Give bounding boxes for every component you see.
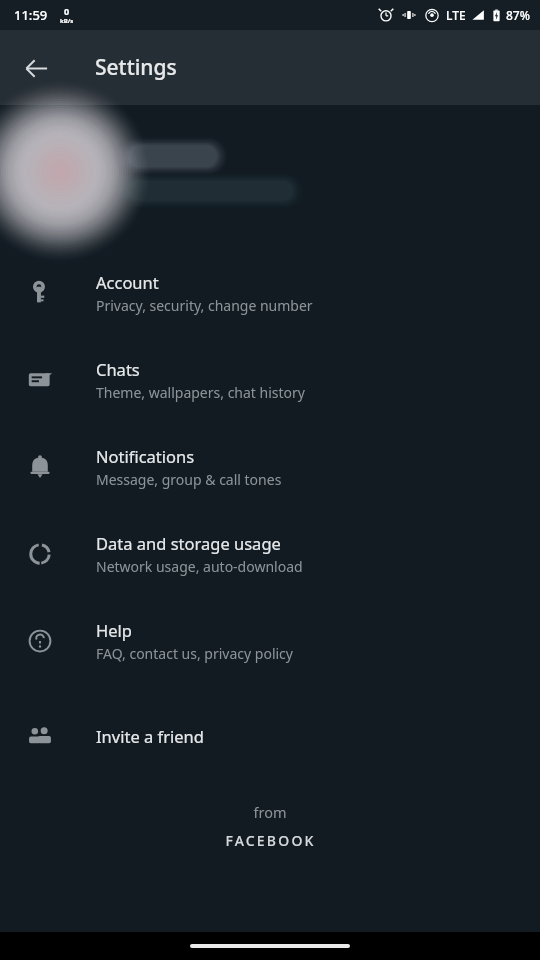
- staticText: FAQ, contact us, privacy policy: [96, 644, 293, 663]
- button[interactable]: Account: [0, 249, 540, 336]
- staticText: FACEBOOK: [225, 831, 316, 850]
- staticText: Privacy, security, change number: [96, 296, 313, 315]
- staticText: 0: [64, 5, 70, 17]
- staticText: Settings: [95, 53, 177, 82]
- staticText: Help: [96, 619, 132, 641]
- staticText: kB/s: [60, 17, 74, 25]
- staticText: Chats: [96, 358, 140, 380]
- staticText: Invite a friend: [96, 725, 204, 747]
- button[interactable]: Invite a friend: [0, 700, 540, 772]
- button[interactable]: Help: [0, 597, 540, 684]
- staticText: Network usage, auto-download: [96, 557, 303, 576]
- staticText: Data and storage usage: [96, 532, 281, 554]
- button[interactable]: Notifications: [0, 423, 540, 510]
- button[interactable]: Profile: [0, 105, 540, 233]
- staticText: LTE: [446, 7, 466, 23]
- staticText: 87%: [506, 7, 530, 23]
- staticText: Notifications: [96, 445, 195, 467]
- staticText: from: [253, 802, 287, 822]
- button[interactable]: Back: [12, 44, 60, 92]
- staticText: Account: [96, 271, 159, 293]
- staticText: 11:59: [14, 6, 48, 24]
- button[interactable]: Chats: [0, 336, 540, 423]
- staticText: Message, group & call tones: [96, 470, 282, 489]
- staticText: Theme, wallpapers, chat history: [96, 383, 305, 402]
- button[interactable]: Data and storage usage: [0, 510, 540, 597]
